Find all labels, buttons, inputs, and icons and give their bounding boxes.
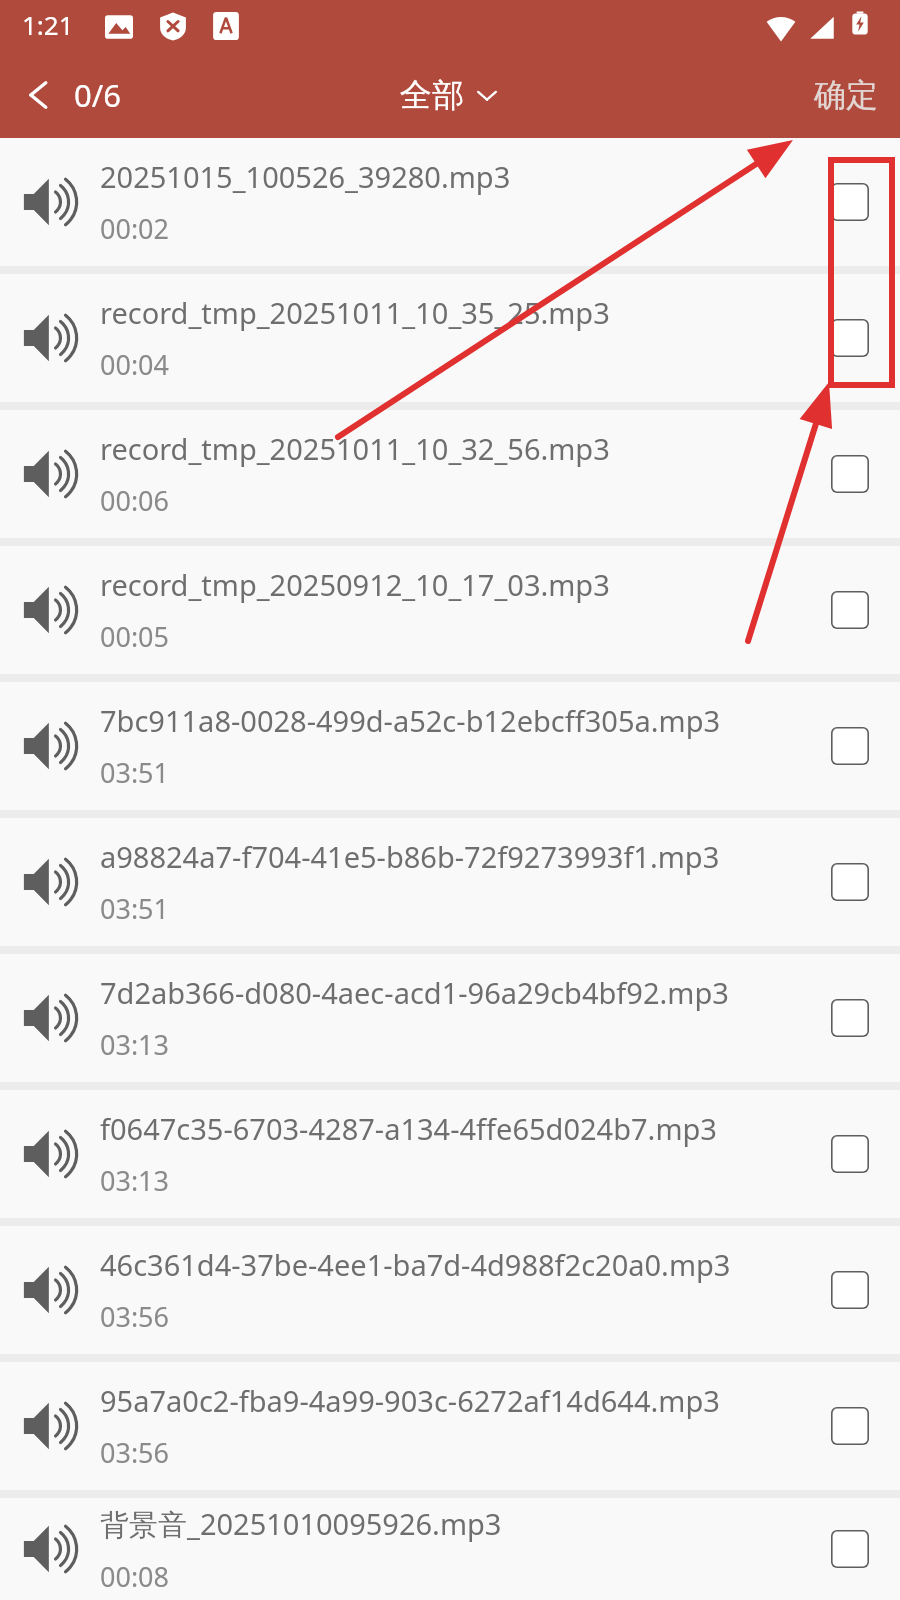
button[interactable]: Select f0647c35-6703-4287-a134-4ffe65d02… [800, 1090, 900, 1218]
button[interactable]: Select record_tmp_20250912_10_17_03.mp3 [800, 546, 900, 674]
button[interactable]: 确定 [792, 65, 900, 125]
staticText: 03:51 [100, 754, 170, 791]
staticText: record_tmp_20250912_10_17_03.mp3 [100, 565, 610, 604]
staticText: 03:56 [100, 1298, 170, 1335]
button[interactable]: record_tmp_20251011_10_35_25.mp3 [0, 274, 900, 402]
staticText: 03:13 [100, 1162, 170, 1199]
button[interactable]: Select 7bc911a8-0028-499d-a52c-b12ebcff3… [800, 682, 900, 810]
staticText: 20251015_100526_39280.mp3 [100, 157, 511, 196]
staticText: 背景音_20251010095926.mp3 [100, 1504, 502, 1544]
staticText: 46c361d4-37be-4ee1-ba7d-4d988f2c20a0.mp3 [100, 1245, 731, 1284]
staticText: 00:05 [100, 618, 170, 655]
button[interactable]: Select 20251015_100526_39280.mp3 [800, 138, 900, 266]
button[interactable]: 全部 [384, 67, 516, 123]
button[interactable]: Back [0, 66, 139, 124]
staticText: 7bc911a8-0028-499d-a52c-b12ebcff305a.mp3 [100, 701, 721, 740]
staticText: 全部 [400, 75, 464, 115]
other: Back [22, 78, 56, 112]
button[interactable]: record_tmp_20251011_10_32_56.mp3 [0, 410, 900, 538]
button[interactable]: 95a7a0c2-fba9-4a99-903c-6272af14d644.mp3 [0, 1362, 900, 1490]
button[interactable]: Select 46c361d4-37be-4ee1-ba7d-4d988f2c2… [800, 1226, 900, 1354]
staticText: 00:02 [100, 210, 170, 247]
staticText: 0/6 [74, 74, 121, 116]
staticText: 1:21 [22, 7, 74, 42]
button[interactable]: f0647c35-6703-4287-a134-4ffe65d024b7.mp3 [0, 1090, 900, 1218]
button[interactable]: Select a98824a7-f704-41e5-b86b-72f927399… [800, 818, 900, 946]
button[interactable]: 7d2ab366-d080-4aec-acd1-96a29cb4bf92.mp3 [0, 954, 900, 1082]
button[interactable]: record_tmp_20250912_10_17_03.mp3 [0, 546, 900, 674]
staticText: 7d2ab366-d080-4aec-acd1-96a29cb4bf92.mp3 [100, 973, 729, 1012]
button[interactable]: 背景音_20251010095926.mp3 [0, 1498, 900, 1600]
button[interactable]: Select 背景音_20251010095926.mp3 [800, 1498, 900, 1600]
button[interactable]: Select record_tmp_20251011_10_32_56.mp3 [800, 410, 900, 538]
staticText: 03:56 [100, 1434, 170, 1471]
staticText: 00:08 [100, 1558, 170, 1595]
staticText: f0647c35-6703-4287-a134-4ffe65d024b7.mp3 [100, 1109, 717, 1148]
button[interactable]: Select 7d2ab366-d080-4aec-acd1-96a29cb4b… [800, 954, 900, 1082]
staticText: record_tmp_20251011_10_35_25.mp3 [100, 293, 610, 332]
button[interactable]: 46c361d4-37be-4ee1-ba7d-4d988f2c20a0.mp3 [0, 1226, 900, 1354]
button[interactable]: Select record_tmp_20251011_10_35_25.mp3 [800, 274, 900, 402]
staticText: 00:06 [100, 482, 170, 519]
button[interactable]: a98824a7-f704-41e5-b86b-72f9273993f1.mp3 [0, 818, 900, 946]
staticText: 03:13 [100, 1026, 170, 1063]
staticText: 确定 [814, 75, 878, 115]
staticText: 03:51 [100, 890, 170, 927]
button[interactable]: Select 95a7a0c2-fba9-4a99-903c-6272af14d… [800, 1362, 900, 1490]
staticText: a98824a7-f704-41e5-b86b-72f9273993f1.mp3 [100, 837, 720, 876]
staticText: record_tmp_20251011_10_32_56.mp3 [100, 429, 610, 468]
button[interactable]: 20251015_100526_39280.mp3 [0, 138, 900, 266]
button[interactable]: 7bc911a8-0028-499d-a52c-b12ebcff305a.mp3 [0, 682, 900, 810]
staticText: 95a7a0c2-fba9-4a99-903c-6272af14d644.mp3 [100, 1381, 720, 1420]
staticText: 00:04 [100, 346, 170, 383]
